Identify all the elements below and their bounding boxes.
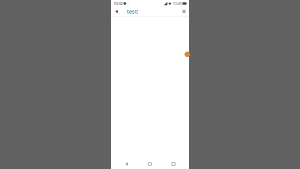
button[interactable]: Clear search	[180, 7, 188, 16]
staticText: 13:40	[172, 1, 181, 6]
staticText: 10:32	[113, 1, 122, 6]
button[interactable]: Back	[112, 7, 121, 16]
staticText: test	[127, 8, 137, 15]
staticText: ''	[127, 1, 129, 6]
button[interactable]: Recent apps	[165, 157, 181, 169]
button[interactable]: Back	[118, 157, 134, 169]
button[interactable]: Home	[142, 157, 158, 169]
